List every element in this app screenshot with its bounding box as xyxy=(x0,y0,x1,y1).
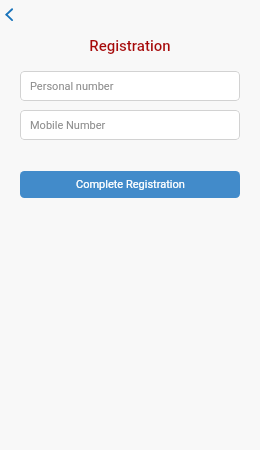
button[interactable]: Personal number xyxy=(20,71,240,101)
staticText: Personal number xyxy=(30,80,114,93)
staticText: Complete Registration xyxy=(76,178,185,191)
staticText: Mobile Number xyxy=(30,119,106,132)
button[interactable]: Mobile Number xyxy=(20,110,240,140)
button[interactable]: Complete Registration xyxy=(20,171,240,198)
button[interactable]: Back xyxy=(0,2,24,26)
staticText: Registration xyxy=(0,37,260,55)
